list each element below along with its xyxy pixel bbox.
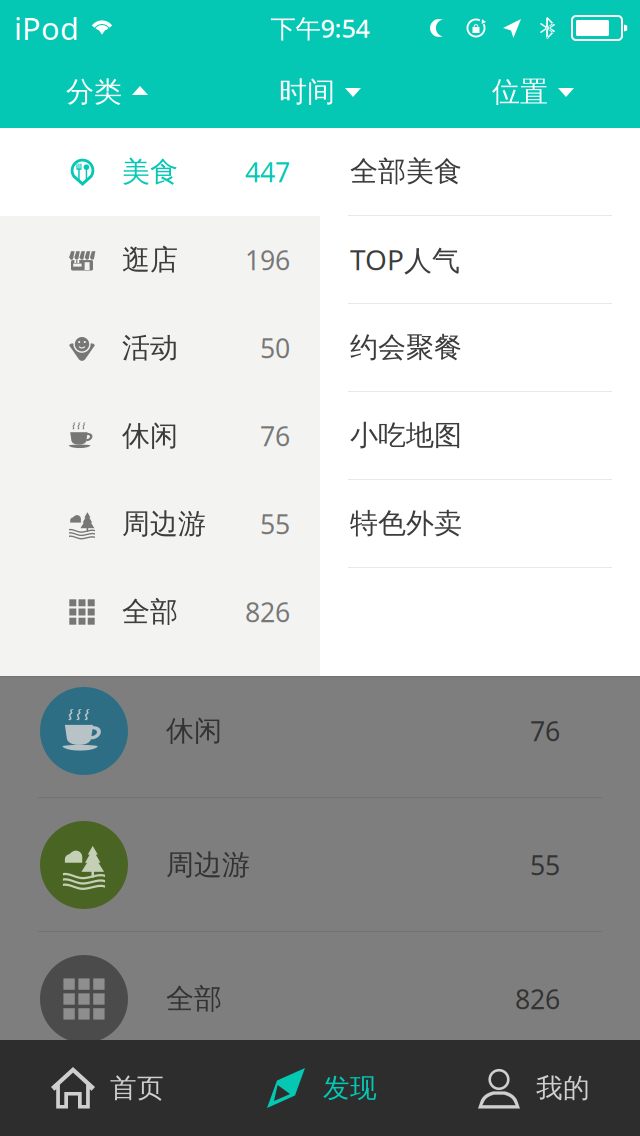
staticText: iPod (14, 8, 79, 48)
button[interactable]: 分类 (0, 56, 213, 128)
staticText: 约会聚餐 (350, 330, 462, 365)
staticText: TOP人气 (350, 241, 460, 278)
staticText: 196 (245, 242, 290, 278)
staticText: 位置 (492, 75, 548, 109)
staticText: 447 (245, 154, 290, 190)
button[interactable]: 休闲 (0, 392, 320, 480)
staticText: 发现 (323, 1072, 377, 1104)
staticText: 全部 (166, 982, 222, 1016)
button[interactable]: 小吃地图 (320, 392, 640, 480)
staticText: 首页 (110, 1072, 164, 1104)
button[interactable]: 全部 (0, 568, 320, 656)
button[interactable]: 时间 (213, 56, 426, 128)
button[interactable]: 特色外卖 (320, 480, 640, 568)
staticText: 特色外卖 (350, 506, 462, 541)
button[interactable]: 活动 (0, 304, 320, 392)
staticText: 时间 (279, 75, 335, 109)
button[interactable]: 我的 (426, 1040, 639, 1136)
staticText: 826 (515, 981, 560, 1017)
staticText: 55 (530, 847, 560, 883)
button[interactable]: TOP人气 (320, 216, 640, 304)
staticText: 50 (260, 330, 290, 366)
button[interactable]: 约会聚餐 (320, 304, 640, 392)
staticText: 活动 (122, 331, 178, 365)
staticText: 76 (530, 713, 560, 749)
button[interactable]: 逛店 (0, 216, 320, 304)
staticText: 美食 (122, 155, 178, 189)
button[interactable]: 位置 (426, 56, 639, 128)
staticText: 我的 (536, 1072, 590, 1104)
button[interactable]: 周边游 (0, 480, 320, 568)
staticText: 逛店 (122, 243, 178, 277)
staticText: 全部 (122, 595, 178, 629)
staticText: 休闲 (166, 714, 222, 748)
staticText: 休闲 (122, 419, 178, 453)
button[interactable]: 全部美食 (320, 128, 640, 216)
staticText: 周边游 (122, 507, 206, 541)
staticText: 周边游 (166, 848, 250, 882)
button[interactable]: 美食 (0, 128, 320, 216)
button[interactable]: 发现 (213, 1040, 426, 1136)
staticText: 小吃地图 (350, 418, 462, 453)
staticText: 全部美食 (350, 154, 462, 189)
staticText: 826 (245, 594, 290, 630)
staticText: 55 (260, 506, 290, 542)
staticText: 76 (260, 418, 290, 454)
button[interactable]: 首页 (0, 1040, 213, 1136)
staticText: 下午9:54 (270, 11, 369, 45)
staticText: 分类 (66, 75, 122, 109)
